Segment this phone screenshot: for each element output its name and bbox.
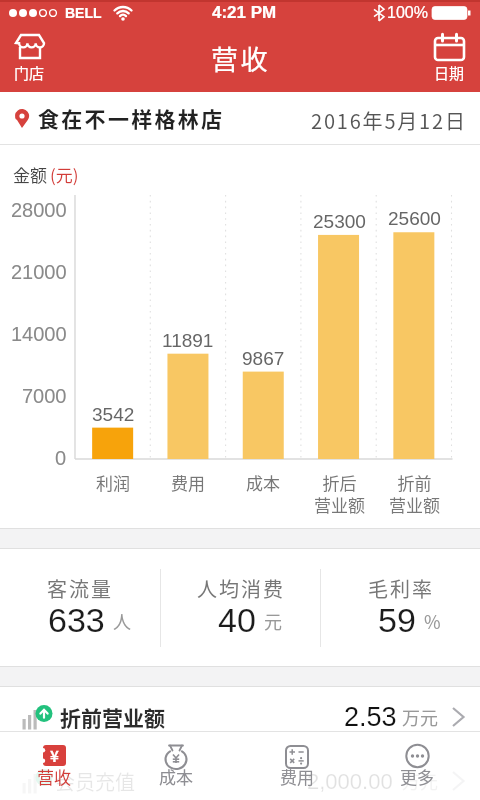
staticText: 费用	[171, 470, 205, 495]
staticText: 9867	[242, 348, 285, 369]
staticText: 100%	[387, 4, 428, 22]
staticText: 2,000.00	[307, 769, 393, 794]
staticText: 成本	[246, 470, 280, 495]
button[interactable]: 折前营业额	[22, 702, 466, 731]
staticText: 11891	[162, 330, 214, 351]
staticText: 28000	[11, 199, 67, 221]
button[interactable]: 成本	[126, 743, 226, 800]
staticText: ¥	[50, 745, 59, 766]
staticText: 毛利率	[368, 574, 434, 603]
staticText: 万元	[402, 768, 438, 794]
staticText: 3542	[92, 404, 135, 425]
staticText: 4:21 PM	[212, 3, 277, 22]
staticText: 客流量	[47, 574, 113, 603]
staticText: (元)	[50, 162, 79, 187]
staticText: 40	[218, 601, 256, 639]
button[interactable]: 门店	[14, 33, 45, 84]
button[interactable]: 毛利率	[321, 574, 480, 642]
staticText: 成本	[159, 764, 193, 789]
staticText: 元	[264, 608, 282, 634]
button[interactable]: 会员充值	[22, 762, 466, 800]
staticText: 人	[113, 608, 131, 634]
staticText: 门店	[14, 62, 45, 84]
staticText: 25300	[313, 211, 366, 232]
button[interactable]: 费用	[247, 743, 347, 800]
staticText: 59	[378, 601, 416, 639]
staticText: 金额	[13, 162, 47, 187]
staticText: 人均消费	[197, 574, 285, 603]
staticText: 万元	[402, 704, 438, 730]
staticText: 7000	[22, 385, 67, 407]
staticText: 营收	[211, 39, 270, 78]
button[interactable]: 日期	[433, 33, 466, 84]
staticText: %	[424, 608, 441, 634]
staticText: 25600	[388, 208, 441, 229]
staticText: 折后 营业额	[314, 470, 365, 517]
button[interactable]: 客流量	[0, 574, 160, 642]
button[interactable]: 食在不一样格林店	[14, 92, 467, 144]
staticText: 折前营业额	[60, 702, 165, 731]
staticText: 更多	[400, 764, 434, 789]
staticText: 折前 营业额	[389, 470, 440, 517]
staticText: 14000	[11, 323, 67, 345]
staticText: 利润	[96, 470, 130, 495]
button[interactable]: 更多	[367, 743, 467, 800]
staticText: 2016年5月12日	[311, 106, 467, 135]
staticText: 2.53	[344, 702, 397, 731]
staticText: 费用	[280, 764, 314, 789]
staticText: 营收	[37, 764, 71, 789]
staticText: 21000	[11, 261, 67, 283]
staticText: 633	[48, 601, 105, 639]
staticText: BELL	[65, 5, 102, 21]
staticText: 日期	[434, 62, 465, 84]
button[interactable]: ¥	[4, 743, 104, 800]
staticText: 会员充值	[55, 767, 135, 796]
staticText: 0	[55, 447, 67, 469]
button[interactable]: 人均消费	[161, 574, 320, 642]
staticText: 食在不一样格林店	[38, 103, 225, 133]
